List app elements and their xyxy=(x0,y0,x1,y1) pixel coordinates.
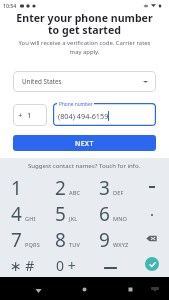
staticText: United States xyxy=(22,77,62,86)
button[interactable]: 0 + xyxy=(44,251,88,277)
staticText: 3 xyxy=(99,175,110,201)
button[interactable]: NEXT xyxy=(13,135,156,151)
button[interactable] xyxy=(53,103,156,126)
staticText: + 1 xyxy=(18,110,33,121)
staticText: 6 xyxy=(99,201,110,227)
button[interactable]: 9 xyxy=(88,225,132,251)
button[interactable]: 3 xyxy=(88,173,132,199)
button[interactable]: 6 xyxy=(88,199,132,225)
staticText: GHI xyxy=(25,215,36,223)
button[interactable]: 2 xyxy=(44,173,88,199)
staticText: ABC xyxy=(69,189,81,197)
staticText: JKL xyxy=(69,215,78,223)
staticText: (804) 494-6159 xyxy=(58,111,109,121)
staticText: DEF xyxy=(113,189,124,197)
button[interactable] xyxy=(88,251,132,277)
staticText: MNO xyxy=(113,215,128,223)
staticText: 8 xyxy=(55,227,66,253)
staticText: TUV xyxy=(69,241,81,249)
button[interactable]: Dash xyxy=(132,173,169,199)
staticText: 2 xyxy=(55,175,66,201)
button[interactable]: 8 xyxy=(44,225,88,251)
button[interactable]: Backspace xyxy=(132,225,169,251)
staticText: 9 xyxy=(99,227,110,253)
staticText: 1 xyxy=(11,175,22,201)
staticText: 5 xyxy=(55,201,66,227)
staticText: PQRS xyxy=(25,241,40,249)
staticText: 10:54 xyxy=(3,2,17,9)
button[interactable]: 1 xyxy=(0,173,44,199)
staticText: You will receive a verification code. Ca… xyxy=(4,39,165,56)
button[interactable]: + 1 xyxy=(13,104,47,126)
staticText: 4 xyxy=(11,201,22,227)
button[interactable]: 5 xyxy=(44,199,88,225)
button[interactable]: Back xyxy=(15,277,61,300)
button[interactable]: Recents xyxy=(107,277,153,300)
staticText: NEXT xyxy=(75,139,94,148)
staticText: 7 xyxy=(11,227,22,253)
button[interactable]: 4 xyxy=(0,199,44,225)
button[interactable]: Switch keyboard xyxy=(141,277,169,300)
staticText: 0 + xyxy=(56,256,76,275)
button[interactable]: Home xyxy=(61,277,107,300)
button[interactable]: United States xyxy=(13,71,156,92)
staticText: Phone number xyxy=(59,101,93,108)
staticText: Enter your phone number to get started xyxy=(3,11,166,37)
button[interactable]: 7 xyxy=(0,225,44,251)
staticText: ∗ # xyxy=(10,256,35,275)
button[interactable]: Period xyxy=(132,199,169,225)
staticText: WXYZ xyxy=(113,241,129,249)
staticText: Suggest contact names? Touch for info. xyxy=(28,161,141,169)
button[interactable]: Enter xyxy=(132,251,169,277)
button[interactable]: ∗ # xyxy=(0,251,44,277)
